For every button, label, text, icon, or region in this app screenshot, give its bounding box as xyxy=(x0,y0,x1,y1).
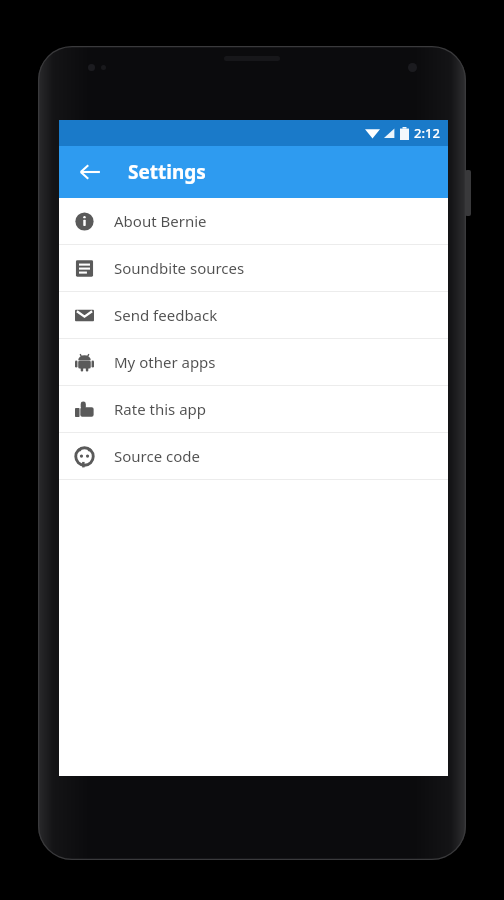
button[interactable]: About Bernie xyxy=(59,198,448,244)
button[interactable]: Send feedback xyxy=(59,292,448,338)
staticText: Settings xyxy=(128,159,206,185)
staticText: Source code xyxy=(114,446,200,466)
button[interactable]: Rate this app xyxy=(59,386,448,432)
staticText: About Bernie xyxy=(114,211,207,231)
staticText: My other apps xyxy=(114,352,216,372)
staticText: 2:12 xyxy=(414,124,440,142)
button[interactable]: Back xyxy=(68,150,112,194)
staticText: Soundbite sources xyxy=(114,258,245,278)
button[interactable]: My other apps xyxy=(59,339,448,385)
button[interactable]: Soundbite sources xyxy=(59,245,448,291)
staticText: Rate this app xyxy=(114,399,207,419)
button[interactable]: Source code xyxy=(59,433,448,479)
staticText: Send feedback xyxy=(114,305,218,325)
